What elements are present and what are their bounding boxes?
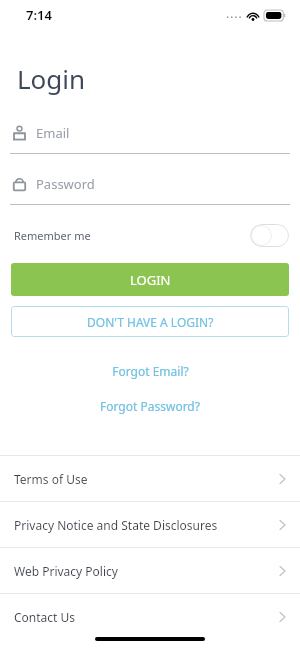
button[interactable]: LOGIN xyxy=(11,263,289,296)
staticText: Terms of Use xyxy=(14,471,88,487)
staticText: Contact Us xyxy=(14,609,76,625)
button[interactable]: Password xyxy=(0,170,300,205)
button[interactable]: DON'T HAVE A LOGIN? xyxy=(11,306,289,337)
button[interactable]: Forgot Email? xyxy=(0,363,300,379)
staticText: Email xyxy=(36,124,70,142)
button[interactable]: Email xyxy=(0,119,300,154)
button[interactable]: Remember me xyxy=(0,220,300,250)
button[interactable]: Contact Us xyxy=(0,594,300,639)
other: Password xyxy=(13,176,26,191)
staticText: LOGIN xyxy=(130,271,171,289)
button[interactable]: Forgot Password? xyxy=(0,398,300,414)
other: Email xyxy=(13,125,26,140)
button[interactable]: Privacy Notice and State Disclosures xyxy=(0,502,300,547)
button[interactable]: Web Privacy Policy xyxy=(0,548,300,593)
staticText: 7:14 xyxy=(26,6,52,24)
staticText: Forgot Password? xyxy=(100,398,200,414)
button[interactable]: Terms of Use xyxy=(0,456,300,501)
staticText: Password xyxy=(36,175,95,193)
staticText: Web Privacy Policy xyxy=(14,563,118,579)
staticText: Privacy Notice and State Disclosures xyxy=(14,517,218,533)
staticText: Login xyxy=(17,61,86,96)
staticText: Remember me xyxy=(14,228,91,243)
staticText: DON'T HAVE A LOGIN? xyxy=(87,314,214,330)
staticText: Forgot Email? xyxy=(112,363,189,379)
